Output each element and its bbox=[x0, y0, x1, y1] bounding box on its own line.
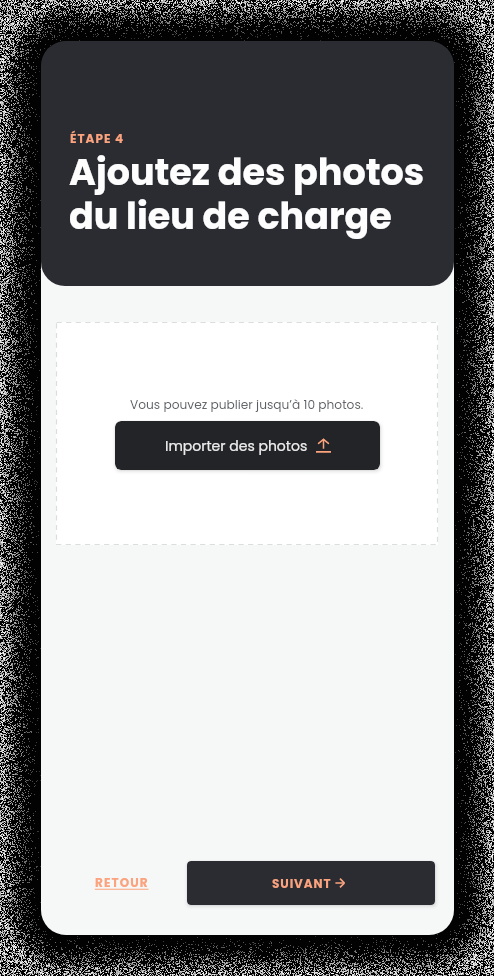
button[interactable]: SUIVANT bbox=[187, 861, 435, 905]
staticText: RETOUR bbox=[95, 874, 149, 891]
button[interactable]: Importer des photos bbox=[115, 421, 380, 470]
staticText: SUIVANT bbox=[272, 875, 332, 892]
staticText: Ajoutez des photos du lieu de charge bbox=[69, 147, 425, 242]
staticText: Importer des photos bbox=[165, 436, 308, 456]
staticText: Vous pouvez publier jusqu’à 10 photos. bbox=[130, 396, 364, 413]
other: Importer des photos bbox=[316, 438, 331, 453]
staticText: ÉTAPE 4 bbox=[70, 130, 125, 147]
button[interactable]: RETOUR bbox=[89, 868, 155, 898]
